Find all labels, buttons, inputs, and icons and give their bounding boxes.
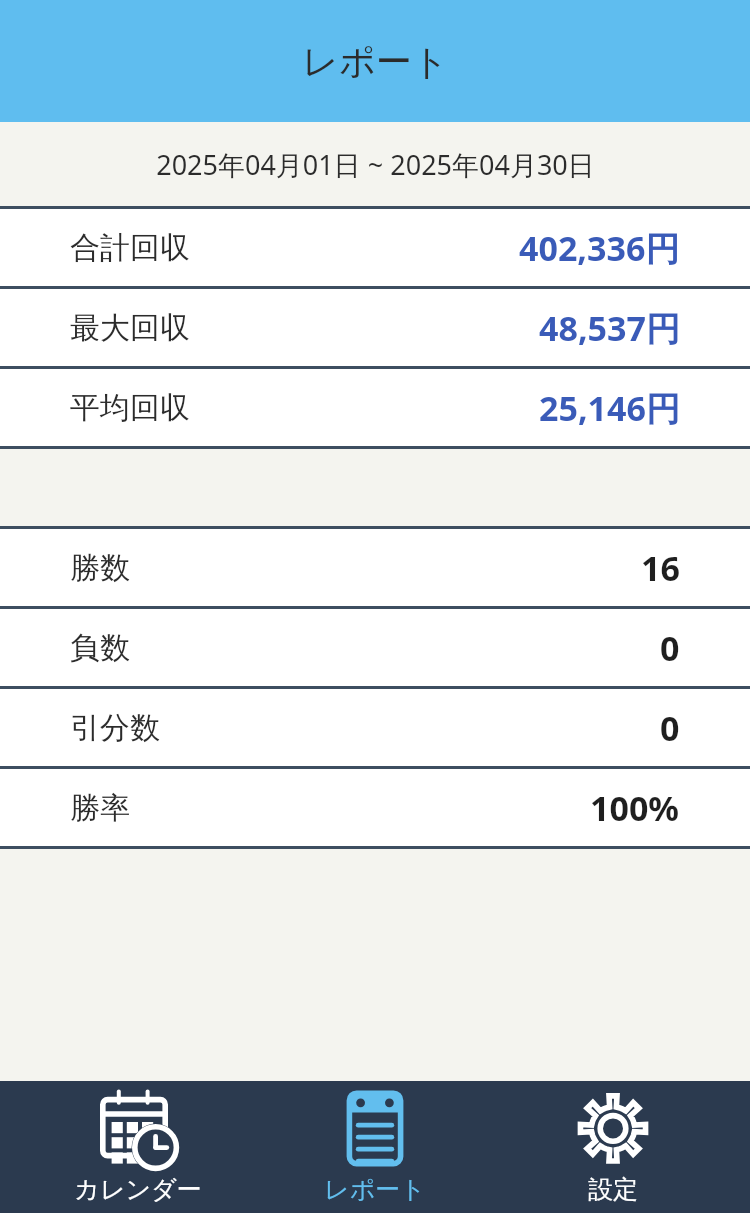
button[interactable]: 平均回収 <box>0 369 750 446</box>
button[interactable]: レポート <box>275 1081 475 1213</box>
button[interactable]: 設定 <box>513 1081 713 1213</box>
button[interactable]: 負数 <box>0 609 750 686</box>
staticText: 引分数 <box>70 709 160 747</box>
staticText: 16 <box>641 545 680 591</box>
staticText: 最大回収 <box>70 309 190 347</box>
staticText: 0 <box>660 705 680 751</box>
staticText: 402,336円 <box>519 225 680 271</box>
button[interactable]: 2025年04月01日 ~ 2025年04月30日 <box>0 122 750 206</box>
staticText: 25,146円 <box>539 385 680 431</box>
staticText: 0 <box>660 625 680 671</box>
staticText: 100% <box>590 785 680 831</box>
staticText: 設定 <box>588 1174 638 1205</box>
staticText: 48,537円 <box>539 305 680 351</box>
staticText: 勝率 <box>70 789 130 827</box>
staticText: 合計回収 <box>70 229 190 267</box>
button[interactable]: カレンダー <box>38 1081 238 1213</box>
staticText: カレンダー <box>74 1174 202 1205</box>
staticText: 勝数 <box>70 549 130 587</box>
staticText: 2025年04月01日 ~ 2025年04月30日 <box>156 146 595 183</box>
staticText: 負数 <box>70 629 130 667</box>
staticText: 平均回収 <box>70 389 190 427</box>
button[interactable]: 勝率 <box>0 769 750 846</box>
staticText: レポート <box>324 1174 426 1205</box>
button[interactable]: 引分数 <box>0 689 750 766</box>
button[interactable]: 勝数 <box>0 529 750 606</box>
button[interactable]: 合計回収 <box>0 209 750 286</box>
button[interactable]: 最大回収 <box>0 289 750 366</box>
staticText: レポート <box>302 39 449 84</box>
